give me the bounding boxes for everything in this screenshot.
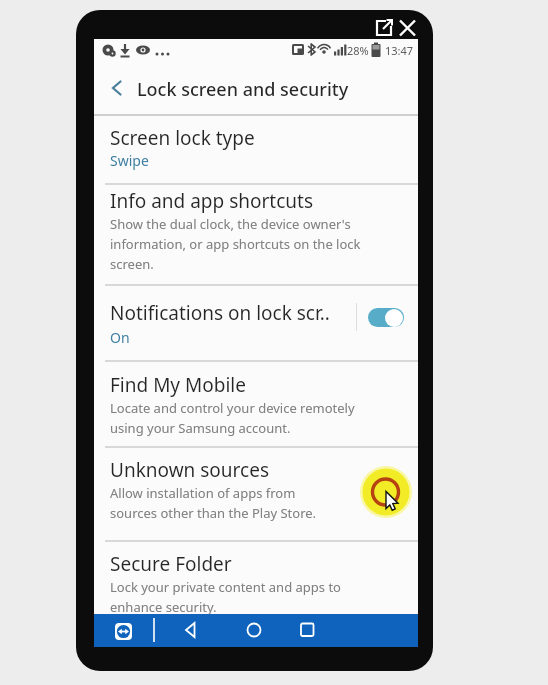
staticText: Lock your private content and apps to en… (110, 578, 341, 616)
button[interactable]: Info and app shortcuts (94, 185, 418, 283)
button[interactable] (115, 623, 132, 640)
button[interactable] (300, 622, 315, 638)
staticText: 13:47 (385, 43, 414, 58)
staticText: On (110, 328, 130, 347)
staticText: Unknown sources (110, 457, 269, 483)
button[interactable] (183, 622, 211, 638)
staticText: Find My Mobile (110, 372, 246, 398)
staticText: Screen lock type (110, 125, 255, 151)
staticText: Lock screen and security (137, 77, 349, 102)
button[interactable]: Find My Mobile (94, 362, 418, 446)
staticText: 28% (347, 43, 369, 58)
button[interactable]: Lock screen and security (94, 60, 418, 115)
staticText: Locate and control your device remotely … (110, 399, 355, 437)
staticText: Allow installation of apps from sources … (110, 484, 317, 522)
button[interactable] (246, 622, 262, 638)
staticText: Notifications on lock scr.. (110, 300, 330, 326)
staticText: Secure Folder (110, 551, 232, 577)
staticText: Swipe (110, 151, 149, 170)
button[interactable]: Secure Folder (94, 542, 418, 614)
staticText: Info and app shortcuts (110, 188, 314, 214)
button[interactable] (368, 308, 404, 327)
button[interactable]: Screen lock type (94, 119, 418, 183)
staticText: Show the dual clock, the device owner's … (110, 215, 361, 273)
button[interactable]: Unknown sources (94, 448, 418, 540)
button[interactable]: Notifications on lock scr.. (94, 286, 418, 360)
